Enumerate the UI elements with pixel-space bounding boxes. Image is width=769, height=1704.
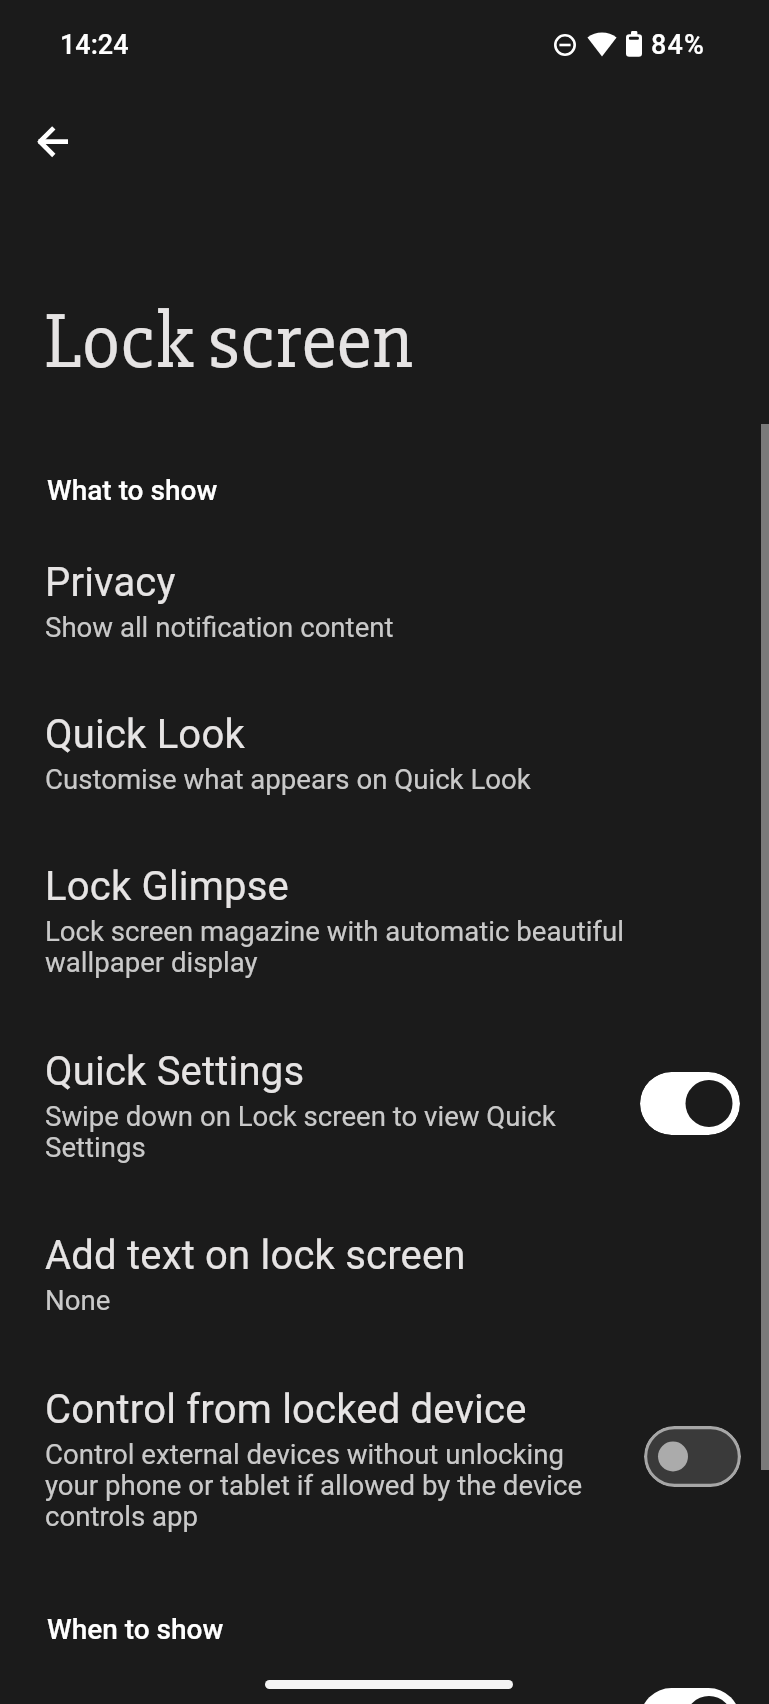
other: Battery 84 percent <box>626 31 642 57</box>
staticText: Add text on lock screen <box>45 1232 466 1279</box>
button[interactable]: Navigate up <box>19 108 87 176</box>
staticText: Customise what appears on Quick Look <box>45 763 531 795</box>
button[interactable]: Control from locked device, off <box>644 1426 741 1487</box>
button[interactable]: Quick Settings <box>0 1048 769 1163</box>
staticText: Privacy <box>45 559 176 606</box>
staticText: What to show <box>47 474 218 507</box>
staticText: 14:24 <box>60 29 129 61</box>
staticText: Lock Glimpse <box>45 863 289 910</box>
button[interactable]: Control from locked device <box>0 1386 769 1532</box>
staticText: When to show <box>47 1613 224 1646</box>
other: Do not disturb <box>554 34 576 56</box>
staticText: Lock screen <box>44 294 413 391</box>
button[interactable]: Quick Look <box>0 711 769 795</box>
staticText: Quick Settings <box>45 1048 305 1095</box>
button[interactable]: Quick Settings, on <box>640 1072 740 1135</box>
staticText: Control external devices without unlocki… <box>45 1438 605 1532</box>
staticText: None <box>45 1284 111 1316</box>
button[interactable]: On <box>640 1688 740 1704</box>
staticText: Show all notification content <box>45 611 394 643</box>
staticText: Lock screen magazine with automatic beau… <box>45 915 645 978</box>
button[interactable]: Lock Glimpse <box>0 863 769 978</box>
other: Wi-Fi <box>587 32 617 57</box>
staticText: Swipe down on Lock screen to view Quick … <box>45 1100 585 1163</box>
staticText: Quick Look <box>45 711 245 758</box>
staticText: 84% <box>651 29 706 61</box>
staticText: Control from locked device <box>45 1386 527 1433</box>
button[interactable]: Add text on lock screen <box>0 1232 769 1316</box>
button[interactable]: Privacy <box>0 559 769 643</box>
